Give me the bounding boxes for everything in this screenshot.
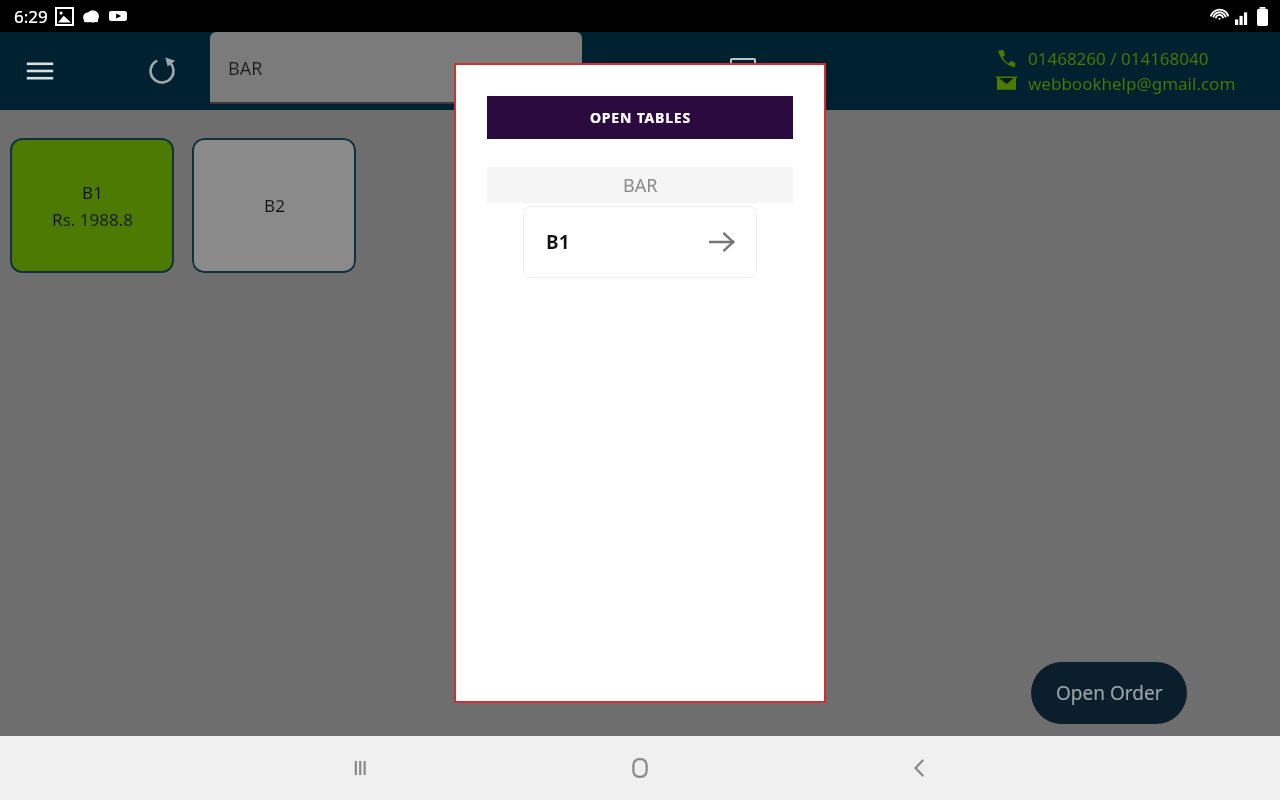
staticText: OPEN TABLES bbox=[590, 108, 691, 127]
staticText: webbookhelp@gmail.com bbox=[1028, 72, 1236, 95]
staticText: 6:29 bbox=[14, 5, 48, 28]
button[interactable]: Refresh bbox=[142, 51, 182, 91]
button[interactable]: B1 bbox=[10, 138, 174, 273]
staticText: B2 bbox=[264, 194, 285, 217]
button[interactable]: Menu bbox=[20, 51, 60, 91]
staticText: 01468260 / 014168040 bbox=[1028, 47, 1209, 70]
staticText: B1 bbox=[546, 229, 570, 255]
button[interactable]: Set Default bbox=[598, 56, 756, 86]
staticText: Open Order bbox=[1056, 680, 1163, 706]
staticText: Set Default bbox=[598, 56, 712, 86]
button[interactable]: Open Order bbox=[1031, 662, 1187, 724]
staticText: BAR bbox=[623, 173, 658, 198]
button[interactable]: B1 bbox=[523, 206, 757, 278]
button[interactable]: Recents bbox=[338, 744, 386, 792]
button[interactable]: Home bbox=[616, 744, 664, 792]
staticText: Rs. 1988.8 bbox=[52, 208, 133, 231]
staticText: B1 bbox=[82, 181, 103, 204]
button[interactable]: BAR bbox=[210, 32, 582, 104]
button[interactable]: Back bbox=[896, 744, 944, 792]
staticText: BAR bbox=[228, 56, 263, 81]
button[interactable]: B2 bbox=[192, 138, 356, 273]
button[interactable]: OPEN TABLES bbox=[487, 96, 793, 139]
